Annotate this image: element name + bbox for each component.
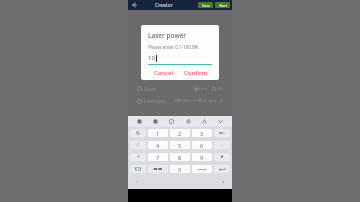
button[interactable]: Switch keyboard [130, 165, 146, 173]
staticText: 1 [156, 130, 160, 137]
other: Back [135, 180, 139, 184]
staticText: 10 [148, 54, 155, 62]
button[interactable]: + [130, 153, 146, 161]
staticText: % [136, 130, 140, 136]
button[interactable]: 5 [170, 141, 190, 149]
button[interactable]: Enter [214, 165, 230, 173]
staticText: 9 [200, 154, 204, 161]
staticText: Confirm [184, 69, 208, 77]
staticText: Line [199, 86, 208, 92]
button[interactable]: 8 [170, 153, 190, 161]
button[interactable]: 0 [170, 165, 190, 173]
staticText: 8 [178, 154, 182, 161]
button[interactable]: Start [215, 2, 230, 8]
staticText: 6 [200, 142, 204, 149]
button[interactable]: Save [198, 2, 213, 8]
staticText: Please enter 0.1-100.0% [148, 44, 199, 50]
button[interactable]: Cancel [148, 69, 180, 77]
staticText: 20W 450nm Blue light [173, 98, 217, 104]
button[interactable]: Translate [200, 117, 209, 126]
button[interactable]: 3 [192, 129, 212, 137]
button[interactable]: Back [130, 1, 138, 9]
button[interactable]: Settings [184, 117, 193, 126]
button[interactable]: Line [194, 86, 208, 92]
staticText: Start [219, 3, 227, 8]
button[interactable]: 9 [192, 153, 212, 161]
staticText: 5 [178, 142, 182, 149]
staticText: Fill [217, 86, 223, 92]
staticText: + [137, 154, 140, 160]
button[interactable]: 6 [192, 141, 212, 149]
button[interactable]: Emoji [167, 117, 176, 126]
button[interactable]: / [130, 141, 146, 149]
button[interactable]: 4 [148, 141, 168, 149]
button[interactable]: Confirm [180, 69, 212, 77]
other: Recents [221, 180, 225, 184]
staticText: Save [202, 3, 210, 8]
button[interactable]: Backspace [214, 129, 230, 137]
staticText: Mode [144, 86, 157, 92]
button[interactable]: % [130, 129, 146, 137]
staticText: Creator [155, 2, 174, 9]
button[interactable]: - [214, 141, 230, 149]
other: Edit laser type [219, 99, 223, 103]
button[interactable]: Laser type [137, 96, 223, 106]
button[interactable]: Collapse keyboard [216, 117, 225, 126]
staticText: 3 [200, 130, 204, 137]
staticText: 4 [156, 142, 160, 149]
staticText: Cancel [154, 69, 174, 77]
staticText: - [221, 142, 223, 148]
button[interactable]: Space [192, 165, 212, 173]
staticText: 7 [156, 154, 160, 161]
button[interactable]: Sticker [151, 117, 160, 126]
button[interactable]: Mode [137, 84, 223, 93]
staticText: / [137, 142, 139, 148]
button[interactable]: Language [148, 165, 168, 173]
staticText: 0 [178, 166, 182, 173]
button[interactable]: 2 [170, 129, 190, 137]
button[interactable]: Clipboard [135, 117, 144, 126]
staticText: Laser type [144, 98, 166, 104]
button[interactable]: Voice input [214, 153, 230, 161]
button[interactable]: 7 [148, 153, 168, 161]
button[interactable]: 1 [148, 129, 168, 137]
staticText: 2 [178, 130, 182, 137]
button[interactable]: Fill [212, 86, 223, 92]
staticText: Laser power [148, 31, 187, 40]
